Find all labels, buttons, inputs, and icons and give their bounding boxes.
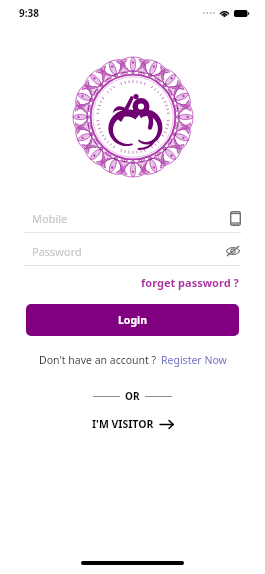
button[interactable]: Login — [26, 304, 239, 336]
other: Mobile — [230, 211, 241, 226]
staticText: Login — [118, 313, 148, 327]
other: Farah logo — [72, 56, 194, 178]
staticText: OR — [125, 389, 140, 403]
button[interactable]: Show password — [225, 244, 241, 258]
staticText: Password — [32, 244, 225, 259]
staticText: 9:38 — [19, 6, 39, 20]
staticText: Register Now — [161, 353, 227, 367]
staticText: Don't have an account ? — [39, 353, 157, 367]
staticText: I'M VISITOR — [92, 417, 154, 431]
staticText: forget password ? — [141, 275, 239, 290]
button[interactable]: I'M VISITOR — [88, 414, 178, 434]
button[interactable]: forget password ? — [141, 274, 265, 291]
button[interactable]: Register Now — [157, 353, 227, 367]
staticText: Mobile — [32, 211, 230, 226]
